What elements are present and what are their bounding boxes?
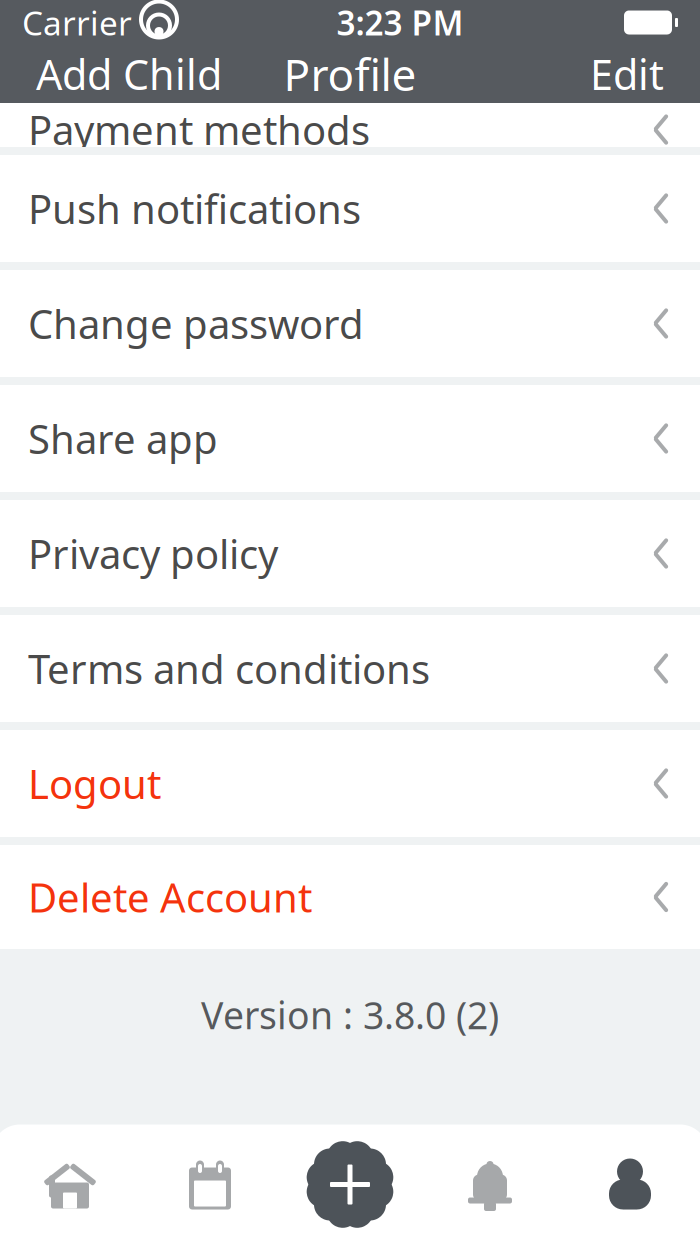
- button[interactable]: Add: [304, 1132, 396, 1236]
- button[interactable]: Share app: [0, 385, 700, 492]
- staticText: Change password: [28, 297, 364, 350]
- staticText: Push notifications: [28, 182, 361, 235]
- button[interactable]: Terms and conditions: [0, 615, 700, 722]
- button[interactable]: Push notifications: [0, 155, 700, 262]
- button[interactable]: Privacy policy: [0, 500, 700, 607]
- button[interactable]: Notifications: [464, 1158, 516, 1210]
- button[interactable]: Add Child: [26, 39, 232, 109]
- staticText: Delete Account: [28, 870, 312, 923]
- staticText: Version : 3.8.0 (2): [201, 990, 499, 1040]
- button[interactable]: Delete Account: [0, 845, 700, 949]
- button[interactable]: Edit: [580, 39, 674, 109]
- staticText: Profile: [283, 45, 416, 103]
- staticText: Add Child: [36, 47, 222, 101]
- staticText: Terms and conditions: [28, 642, 430, 695]
- staticText: Share app: [28, 412, 218, 465]
- staticText: Logout: [28, 757, 161, 810]
- button[interactable]: Calendar: [184, 1158, 236, 1210]
- button[interactable]: Home: [44, 1158, 96, 1210]
- staticText: Payment methods: [28, 103, 370, 156]
- button[interactable]: Profile: [604, 1158, 656, 1210]
- staticText: Edit: [590, 47, 664, 101]
- staticText: 3:23 PM: [336, 0, 463, 45]
- button[interactable]: Change password: [0, 270, 700, 377]
- staticText: Privacy policy: [28, 527, 278, 580]
- button[interactable]: Payment methods: [0, 103, 700, 147]
- button[interactable]: Logout: [0, 730, 700, 837]
- staticText: Carrier: [22, 0, 132, 45]
